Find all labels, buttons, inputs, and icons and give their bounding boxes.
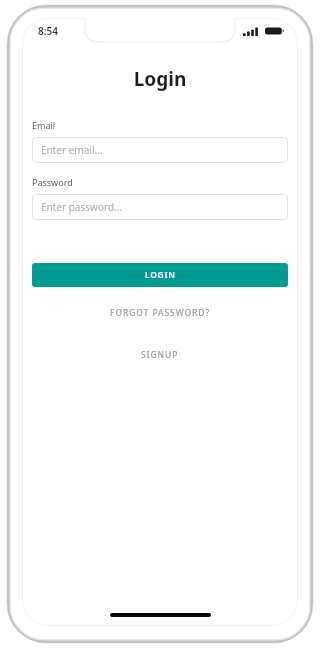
staticText: Password bbox=[32, 176, 73, 188]
staticText: 8:54 bbox=[38, 24, 58, 38]
button[interactable]: Enter email... bbox=[32, 137, 288, 163]
staticText: LOGIN bbox=[145, 269, 176, 281]
other: Home indicator bbox=[110, 613, 211, 617]
button[interactable]: FORGOT PASSWORD? bbox=[32, 307, 288, 319]
staticText: Enter email... bbox=[41, 143, 103, 157]
staticText: Enter password... bbox=[41, 200, 123, 214]
button[interactable]: Enter password... bbox=[32, 194, 288, 220]
staticText: FORGOT PASSWORD? bbox=[110, 307, 211, 319]
staticText: Login bbox=[32, 66, 288, 92]
staticText: Email bbox=[32, 119, 56, 131]
button[interactable]: LOGIN bbox=[32, 263, 288, 287]
staticText: SIGNUP bbox=[141, 349, 179, 361]
button[interactable]: SIGNUP bbox=[32, 349, 288, 361]
